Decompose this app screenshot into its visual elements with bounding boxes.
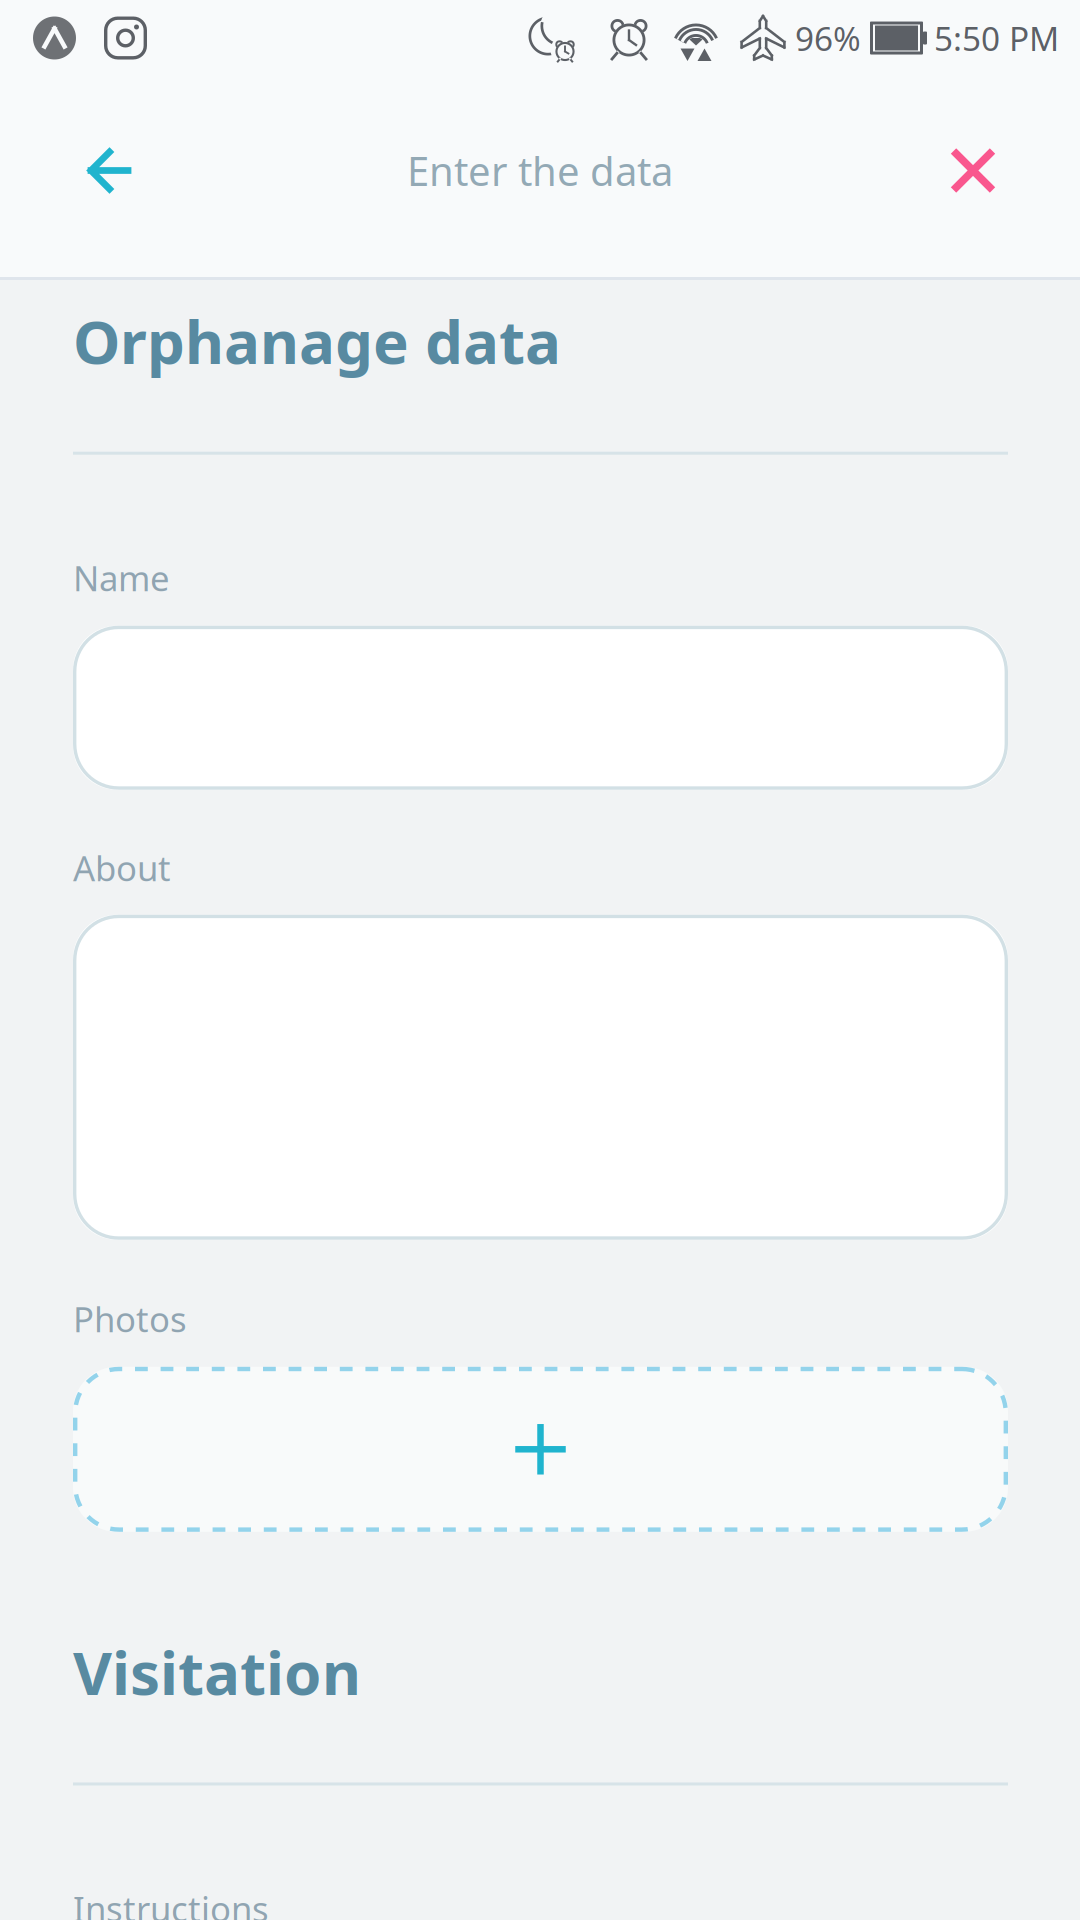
staticText: Photos bbox=[73, 1296, 187, 1342]
staticText: 96% bbox=[795, 16, 861, 60]
staticText: Instructions bbox=[73, 1885, 269, 1920]
staticText: 5:50 PM bbox=[934, 16, 1059, 60]
button[interactable]: Back bbox=[42, 110, 173, 230]
staticText: Enter the data bbox=[407, 144, 673, 197]
staticText: About bbox=[73, 845, 171, 891]
button[interactable]: Add photo bbox=[73, 1367, 1008, 1532]
button[interactable]: Close bbox=[910, 110, 1036, 230]
staticText: Visitation bbox=[73, 1632, 361, 1711]
staticText: Name bbox=[73, 555, 170, 601]
staticText: Orphanage data bbox=[73, 301, 561, 381]
